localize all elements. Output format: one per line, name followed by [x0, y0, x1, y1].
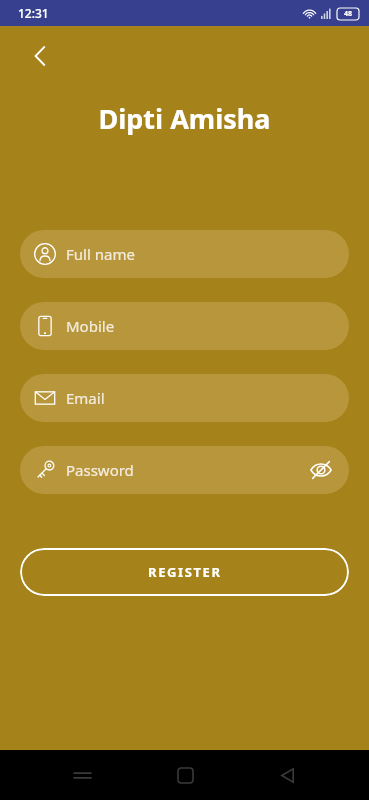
staticText: Email [66, 388, 105, 408]
button[interactable]: Back [266, 754, 308, 796]
staticText: Dipti Amisha [98, 100, 271, 137]
button[interactable]: Password [20, 446, 349, 494]
button[interactable]: Show password [307, 456, 335, 484]
staticText: Full name [66, 244, 135, 264]
staticText: Password [66, 460, 134, 480]
button[interactable]: Full name [20, 230, 349, 278]
button[interactable]: Mobile [20, 302, 349, 350]
staticText: REGISTER [148, 563, 222, 581]
button[interactable]: Home [164, 754, 206, 796]
button[interactable]: Recent apps [61, 754, 103, 796]
staticText: Mobile [66, 316, 115, 336]
button[interactable]: Back [18, 34, 62, 78]
button[interactable]: Email [20, 374, 349, 422]
staticText: 48 [344, 9, 353, 19]
button[interactable]: REGISTER [20, 548, 349, 596]
staticText: 12:31 [18, 5, 49, 21]
